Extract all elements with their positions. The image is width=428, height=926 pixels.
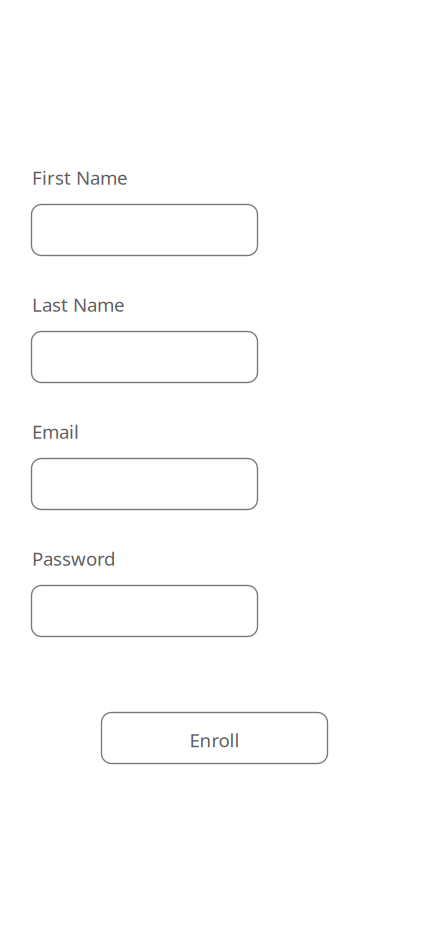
staticText: Last Name <box>32 292 125 317</box>
staticText: Password <box>32 546 115 571</box>
button[interactable]: Enroll <box>101 713 327 764</box>
staticText: Enroll <box>189 728 239 752</box>
button[interactable]: Password <box>0 547 258 637</box>
button[interactable]: First Name <box>0 166 258 256</box>
staticText: Email <box>32 419 79 444</box>
button[interactable]: Last Name <box>0 293 258 383</box>
button[interactable]: Email <box>0 420 258 510</box>
staticText: First Name <box>32 165 128 190</box>
